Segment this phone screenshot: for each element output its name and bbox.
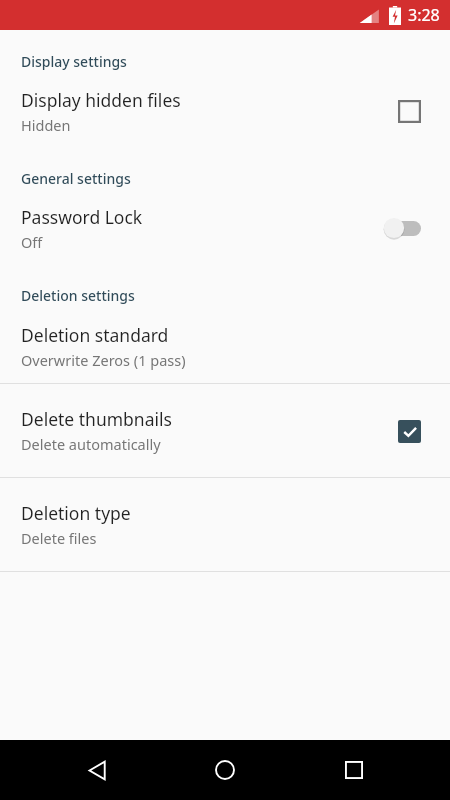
button[interactable]: Back bbox=[65, 740, 129, 800]
staticText: Password Lock bbox=[21, 205, 143, 229]
staticText: Deletion type bbox=[21, 501, 131, 525]
button[interactable]: Recent apps bbox=[322, 740, 386, 800]
staticText: General settings bbox=[21, 169, 131, 188]
staticText: Off bbox=[21, 232, 43, 252]
staticText: Deletion settings bbox=[21, 286, 135, 305]
staticText: Delete automatically bbox=[21, 434, 161, 454]
button[interactable]: Delete thumbnails checkbox, checked bbox=[389, 411, 429, 451]
staticText: Delete files bbox=[21, 528, 97, 548]
staticText: Display settings bbox=[21, 52, 127, 71]
button[interactable]: Display hidden files checkbox, unchecked bbox=[389, 91, 429, 131]
staticText: Display hidden files bbox=[21, 88, 181, 112]
button[interactable]: Home bbox=[193, 740, 257, 800]
button[interactable]: Delete thumbnails bbox=[0, 384, 450, 477]
staticText: Deletion standard bbox=[21, 323, 169, 347]
staticText: Overwrite Zeros (1 pass) bbox=[21, 350, 186, 370]
staticText: Delete thumbnails bbox=[21, 407, 172, 431]
button[interactable]: Password Lock switch, off bbox=[377, 208, 429, 248]
button[interactable]: Deletion type bbox=[0, 478, 450, 571]
button[interactable]: Password Lock bbox=[0, 192, 450, 264]
staticText: Hidden bbox=[21, 115, 71, 135]
staticText: 3:28 bbox=[408, 4, 440, 26]
button[interactable]: Deletion standard bbox=[0, 309, 450, 383]
button[interactable]: Display hidden files bbox=[0, 75, 450, 147]
